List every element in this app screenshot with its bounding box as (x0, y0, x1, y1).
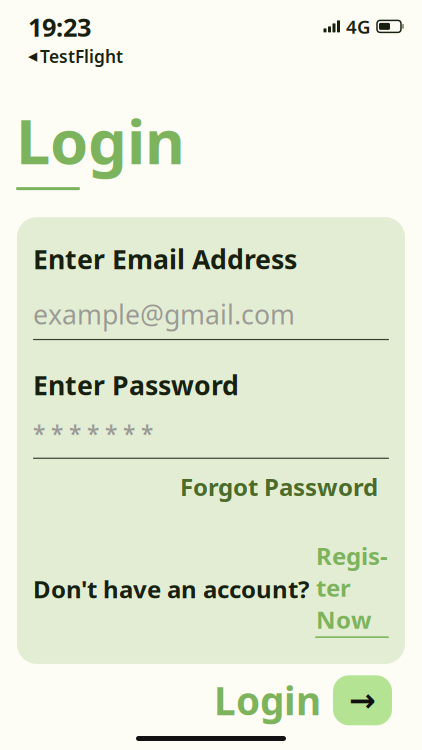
button[interactable]: Log in (333, 675, 392, 725)
staticText: 19:23 (28, 10, 91, 44)
staticText: Enter Password (33, 367, 239, 402)
button[interactable]: Don't have an account? (33, 503, 389, 664)
staticText: Login (16, 100, 185, 181)
staticText: TestFlight (40, 45, 123, 68)
staticText: Enter Email Address (33, 241, 297, 276)
staticText: * * * * * * * (33, 418, 153, 449)
staticText: Register Now (316, 540, 388, 635)
staticText: ◀ (28, 49, 37, 63)
staticText: 4G (346, 14, 371, 39)
staticText: example@gmail.com (33, 296, 295, 332)
staticText: Login (214, 675, 321, 726)
button[interactable]: Forgot Password (33, 459, 389, 503)
staticText: Don't have an account? (33, 573, 309, 605)
staticText: → (349, 682, 376, 718)
staticText: Forgot Password (180, 471, 378, 503)
button[interactable]: Login (214, 675, 321, 726)
